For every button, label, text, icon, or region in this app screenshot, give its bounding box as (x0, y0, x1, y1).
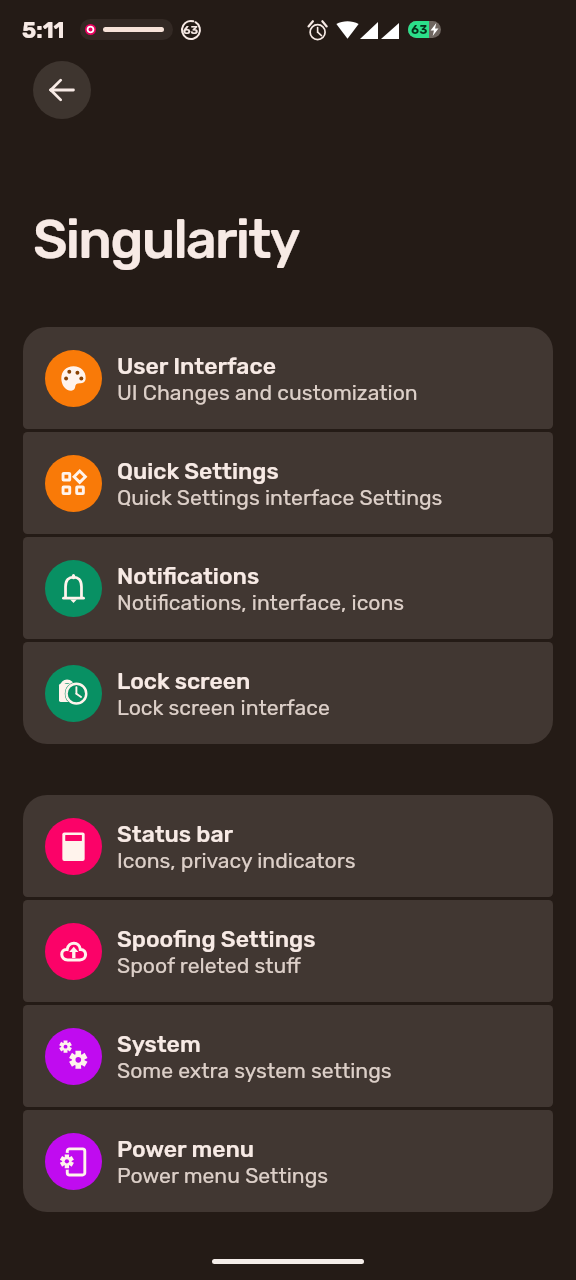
button[interactable]: System (23, 1005, 553, 1107)
button[interactable]: Quick Settings (23, 432, 553, 534)
staticText: Spoof releted stuff (117, 953, 301, 978)
staticText: User Interface (117, 352, 276, 379)
staticText: Lock screen (117, 667, 251, 694)
staticText: Quick Settings interface Settings (117, 485, 443, 510)
button[interactable]: Status bar (23, 795, 553, 897)
staticText: Some extra system settings (117, 1058, 392, 1083)
staticText: Notifications (117, 562, 260, 589)
staticText: Singularity (33, 208, 299, 272)
staticText: Power menu (117, 1135, 255, 1162)
button[interactable]: Power menu (23, 1110, 553, 1212)
button[interactable]: Notifications (23, 537, 553, 639)
staticText: 63 (411, 22, 428, 37)
staticText: Quick Settings (117, 457, 279, 484)
staticText: Status bar (117, 820, 234, 847)
button[interactable]: Lock screen (23, 642, 553, 744)
staticText: UI Changes and customization (117, 380, 418, 405)
staticText: 5:11 (22, 17, 65, 43)
button[interactable]: User Interface (23, 327, 553, 429)
staticText: Icons, privacy indicators (117, 848, 356, 873)
button[interactable]: Spoofing Settings (23, 900, 553, 1002)
button[interactable]: Back (33, 61, 91, 119)
staticText: System (117, 1030, 201, 1057)
staticText: Notifications, interface, icons (117, 590, 405, 615)
staticText: 63 (183, 23, 199, 37)
staticText: Lock screen interface (117, 695, 330, 720)
staticText: Power menu Settings (117, 1163, 329, 1188)
staticText: Spoofing Settings (117, 925, 316, 952)
